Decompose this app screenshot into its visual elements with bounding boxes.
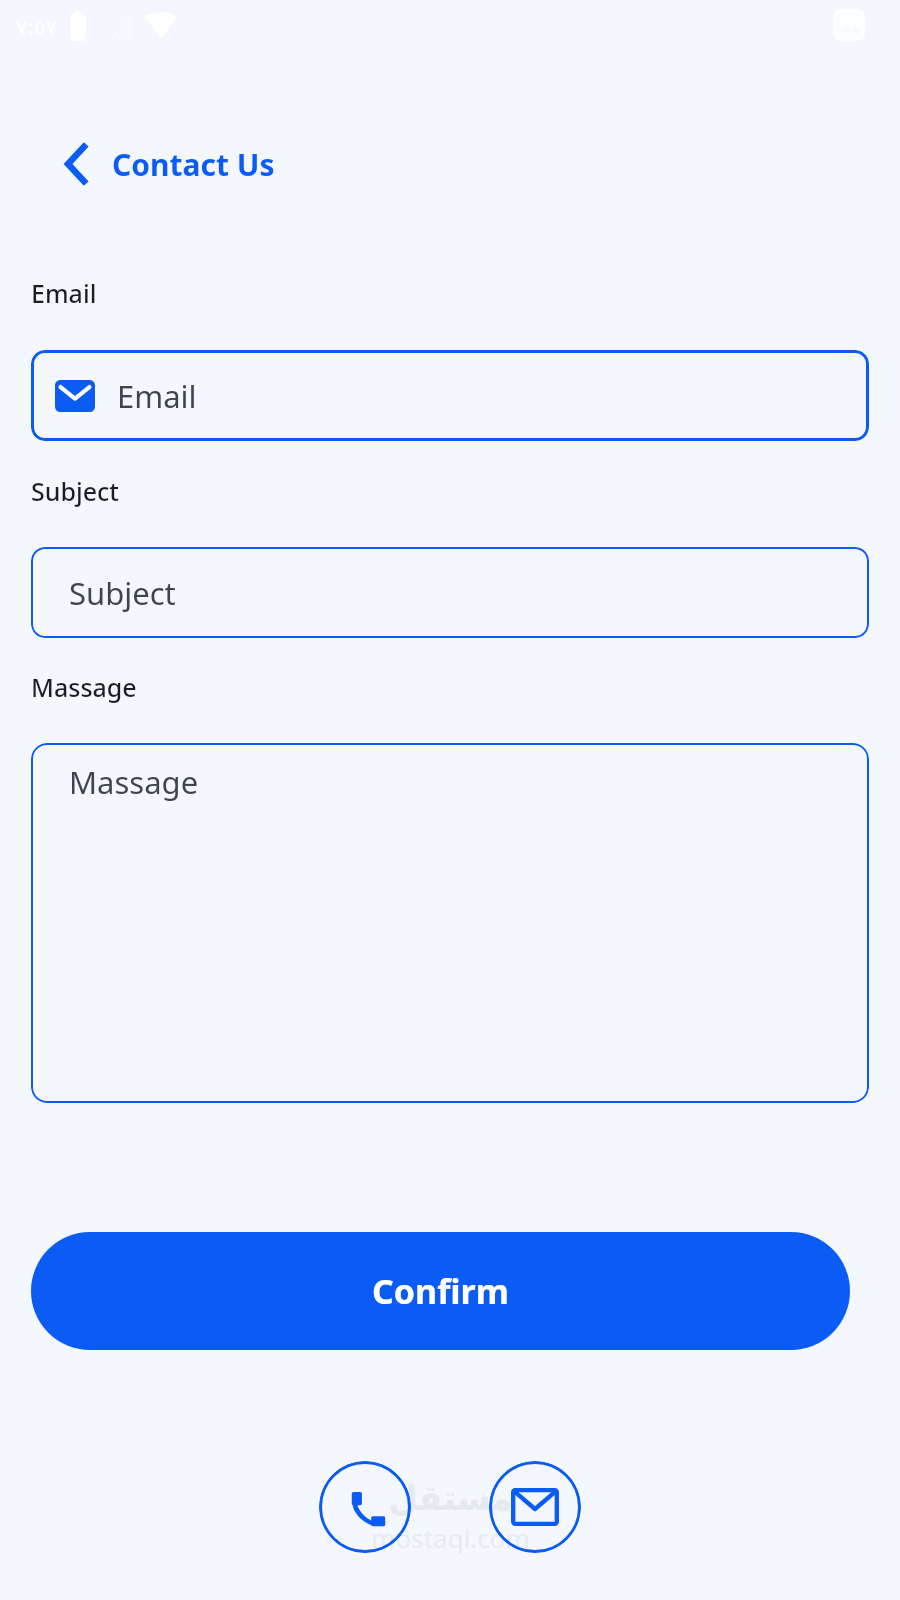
staticText: Contact Us xyxy=(112,144,275,185)
staticText: مستقل xyxy=(388,1478,513,1518)
staticText: Email xyxy=(117,375,197,417)
staticText: mostaql.com xyxy=(371,1520,530,1555)
button[interactable]: Subject xyxy=(31,547,869,638)
button[interactable]: Back xyxy=(52,136,279,192)
button[interactable]: Call us xyxy=(319,1461,411,1553)
staticText: Massage xyxy=(69,761,199,803)
button[interactable]: Confirm xyxy=(31,1232,850,1350)
staticText: Subject xyxy=(69,572,176,614)
button[interactable]: Email xyxy=(31,350,869,441)
staticText: ٧:٥٧ xyxy=(16,11,58,41)
staticText: Email xyxy=(31,276,97,310)
staticText: Confirm xyxy=(372,1268,509,1314)
staticText: Massage xyxy=(31,670,137,704)
staticText: Subject xyxy=(31,474,119,508)
button[interactable]: Massage xyxy=(31,743,869,1103)
button[interactable]: Email us xyxy=(489,1461,581,1553)
